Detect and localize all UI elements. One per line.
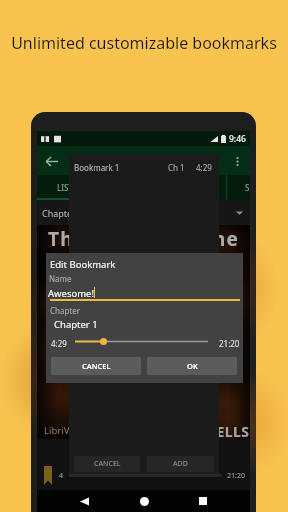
button[interactable]: CANCEL	[51, 357, 141, 375]
button[interactable]: ADD	[147, 456, 214, 472]
staticText: OK	[187, 361, 198, 371]
staticText: CANCEL	[94, 459, 121, 469]
button[interactable]: OK	[147, 357, 237, 375]
staticText: Chapter	[50, 305, 81, 316]
staticText: Chapter	[42, 207, 76, 219]
staticText: Bookmark 1	[74, 162, 120, 173]
staticText: ADD	[173, 459, 188, 469]
staticText: Edit Bookmark	[50, 258, 116, 271]
button[interactable]: S	[227, 175, 250, 200]
staticText: 4:29	[196, 162, 212, 173]
button[interactable]: Recent apps	[191, 490, 215, 512]
staticText: Unlimited customizable bookmarks	[0, 32, 288, 54]
button[interactable]: Chapter	[37, 200, 250, 225]
staticText: S	[245, 182, 250, 193]
button[interactable]: More options	[224, 148, 250, 174]
staticText: Ch 1	[168, 162, 185, 173]
staticText: 4	[59, 471, 64, 481]
staticText: The Time Machine	[37, 226, 250, 252]
staticText: Chapter 1	[54, 318, 98, 331]
staticText: LIST	[57, 182, 73, 193]
button[interactable]: Navigate up	[37, 147, 65, 175]
staticText: 4:29	[51, 338, 67, 349]
button[interactable]: CANCEL	[74, 456, 140, 472]
button[interactable]: LIST	[37, 175, 92, 200]
button[interactable]: BOOKMARKS	[92, 175, 226, 200]
button[interactable]: Back	[72, 490, 96, 512]
staticText: 21:20	[227, 471, 245, 481]
button[interactable]: Home	[132, 490, 156, 512]
staticText: Awesome!	[48, 287, 94, 300]
staticText: 9:46	[229, 133, 246, 145]
staticText: Name	[49, 273, 72, 284]
button[interactable]: Search	[198, 148, 224, 174]
staticText: H.G. WELLS	[169, 422, 250, 441]
staticText: LibriVox	[44, 424, 80, 437]
staticText: CANCEL	[82, 361, 111, 371]
staticText: 21:20	[219, 338, 240, 349]
